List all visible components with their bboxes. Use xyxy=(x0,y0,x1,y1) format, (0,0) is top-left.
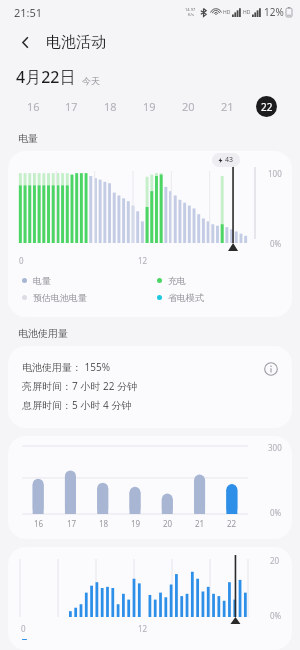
staticText: 20 xyxy=(270,555,280,566)
staticText: 0% xyxy=(270,610,282,621)
staticText: 16 xyxy=(34,518,44,529)
staticText: 电量 xyxy=(18,132,38,145)
staticText: 12% xyxy=(264,5,284,19)
staticText: 16 xyxy=(27,99,40,114)
staticText: 4月22日 xyxy=(16,66,76,88)
staticText: 17 xyxy=(67,518,77,529)
button[interactable]: 17 xyxy=(52,89,91,123)
staticText: 17 xyxy=(65,99,78,114)
staticText: HD xyxy=(223,9,231,16)
staticText: 21 xyxy=(221,99,234,114)
staticText: 充电 xyxy=(168,275,186,286)
staticText: 0 xyxy=(21,623,26,634)
button[interactable]: 20 xyxy=(169,89,208,123)
staticText: 息屏时间：5 小时 4 分钟 xyxy=(22,398,132,412)
button[interactable]: 21 xyxy=(208,89,247,123)
staticText: 22 xyxy=(227,518,237,529)
button[interactable]: 22 xyxy=(247,89,286,123)
staticText: 电量 xyxy=(33,275,51,286)
staticText: 43 xyxy=(225,155,234,165)
staticText: 19 xyxy=(143,99,156,114)
button[interactable]: 20 xyxy=(8,547,292,650)
button[interactable]: 电池使用量： 155% xyxy=(8,346,292,428)
staticText: 22 xyxy=(261,100,273,114)
staticText: HD xyxy=(243,9,251,16)
staticText: 14.97 xyxy=(185,7,196,12)
staticText: 21 xyxy=(195,518,205,529)
staticText: 12 xyxy=(138,623,148,634)
staticText: 20 xyxy=(182,99,195,114)
button[interactable]: 18 xyxy=(91,89,130,123)
staticText: 0 xyxy=(19,255,24,266)
staticText: 20 xyxy=(163,518,173,529)
staticText: 0% xyxy=(270,238,282,249)
staticText: 省电模式 xyxy=(168,292,204,303)
staticText: 亮屏时间：7 小时 22 分钟 xyxy=(22,379,137,393)
button[interactable]: 19 xyxy=(130,89,169,123)
staticText: 电池使用量 xyxy=(18,327,68,340)
staticText: 300 xyxy=(268,442,282,453)
button[interactable]: 100 xyxy=(8,151,292,317)
staticText: 18 xyxy=(99,518,109,529)
staticText: 19 xyxy=(131,518,141,529)
staticText: 今天 xyxy=(82,75,100,86)
button[interactable]: 300 xyxy=(8,436,292,539)
staticText: 12 xyxy=(138,255,148,266)
staticText: 0% xyxy=(270,507,282,518)
staticText: 电池使用量： 155% xyxy=(22,360,111,374)
staticText: 电池活动 xyxy=(46,33,106,52)
staticText: 预估电池电量 xyxy=(33,292,87,303)
staticText: K/s xyxy=(188,12,194,17)
button[interactable]: Back xyxy=(12,29,38,55)
staticText: 18 xyxy=(104,99,117,114)
button[interactable]: 16 xyxy=(14,89,52,123)
staticText: 100 xyxy=(268,168,282,179)
button[interactable]: Info xyxy=(262,360,280,378)
staticText: 21:51 xyxy=(14,5,43,20)
